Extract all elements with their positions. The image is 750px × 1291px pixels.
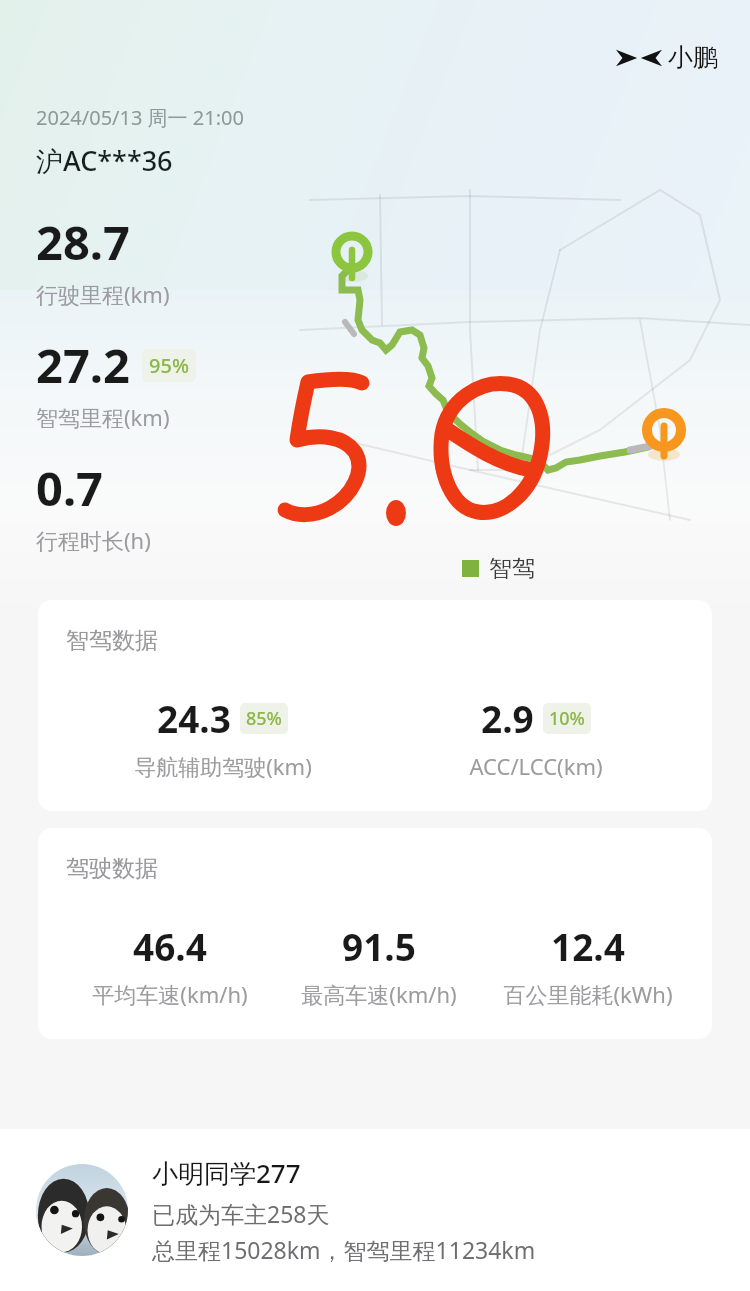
staticText: 平均车速(km/h) (92, 979, 248, 1009)
staticText: 10% (549, 706, 585, 731)
staticText: 85% (246, 706, 282, 731)
button[interactable]: 智驾数据 (38, 600, 712, 811)
staticText: 百公里能耗(kWh) (503, 979, 673, 1009)
staticText: 28.7 (36, 210, 130, 274)
staticText: 最高车速(km/h) (301, 979, 457, 1009)
staticText: 2024/05/13 周一 21:00 (36, 104, 244, 131)
staticText: 小鹏 (668, 42, 718, 73)
staticText: 46.4 (133, 921, 207, 971)
staticText: 已成为车主258天 (152, 1198, 330, 1229)
staticText: 91.5 (342, 921, 416, 971)
staticText: 95% (149, 352, 189, 379)
button[interactable]: 小鹏 XPeng (616, 42, 718, 73)
button[interactable]: 小明同学277 (0, 1129, 750, 1291)
staticText: 0.7 (36, 456, 103, 520)
button[interactable]: 驾驶数据 (38, 828, 712, 1039)
staticText: 行驶里程(km) (36, 279, 170, 309)
staticText: 小明同学277 (152, 1155, 301, 1191)
staticText: 驾驶数据 (66, 854, 158, 883)
staticText: 智驾里程(km) (36, 402, 170, 432)
staticText: ACC/LCC(km) (469, 751, 603, 781)
staticText: 12.4 (551, 921, 625, 971)
staticText: 总里程15028km，智驾里程11234km (152, 1234, 536, 1265)
staticText: 导航辅助驾驶(km) (134, 751, 312, 781)
staticText: 24.3 (157, 693, 231, 743)
staticText: 27.2 (36, 333, 130, 397)
staticText: 2.9 (481, 693, 534, 743)
staticText: 智驾数据 (66, 626, 158, 655)
staticText: 行程时长(h) (36, 525, 151, 555)
staticText: 沪AC***36 (36, 142, 173, 179)
staticText: 智驾 (489, 554, 535, 583)
